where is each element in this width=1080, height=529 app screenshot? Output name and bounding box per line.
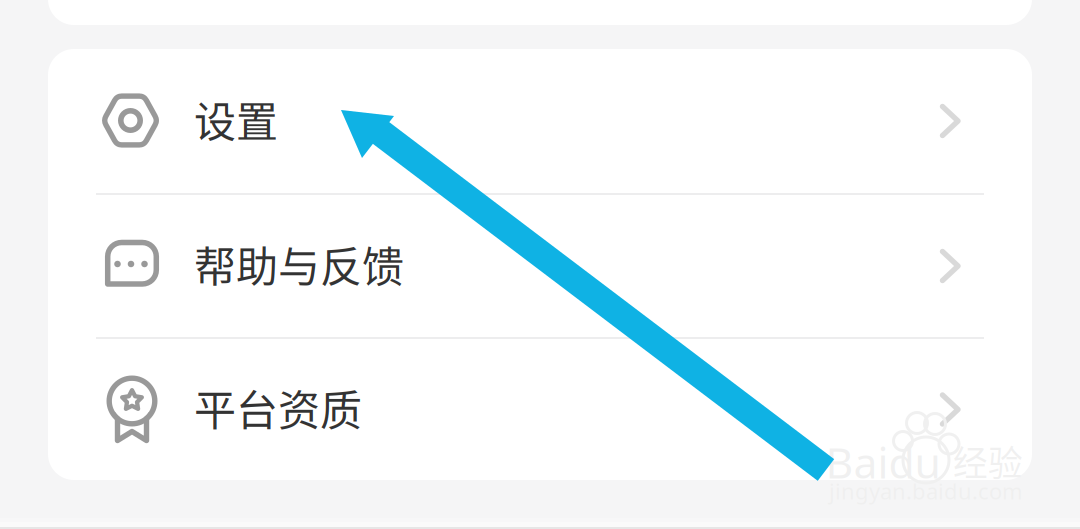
button[interactable]: 帮助与反馈	[48, 195, 1032, 337]
button[interactable]: 设置	[48, 49, 1032, 193]
staticText: jingyan.baidu.com	[829, 476, 1023, 506]
button[interactable]: 平台资质	[48, 339, 1032, 480]
staticText: 平台资质	[194, 377, 362, 438]
staticText: 设置	[194, 89, 278, 149]
staticText: 帮助与反馈	[194, 234, 404, 294]
staticText: Baidu	[825, 433, 940, 491]
staticText: 经验	[953, 436, 1023, 486]
